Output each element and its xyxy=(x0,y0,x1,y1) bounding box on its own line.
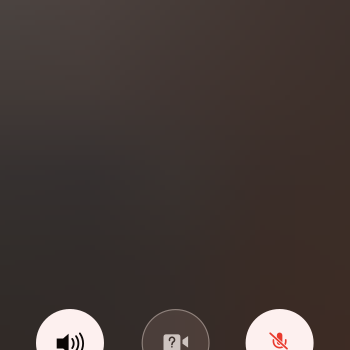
button[interactable]: Speaker xyxy=(0,0,350,350)
button[interactable]: Camera xyxy=(0,0,350,350)
button[interactable]: Mute xyxy=(0,0,350,350)
